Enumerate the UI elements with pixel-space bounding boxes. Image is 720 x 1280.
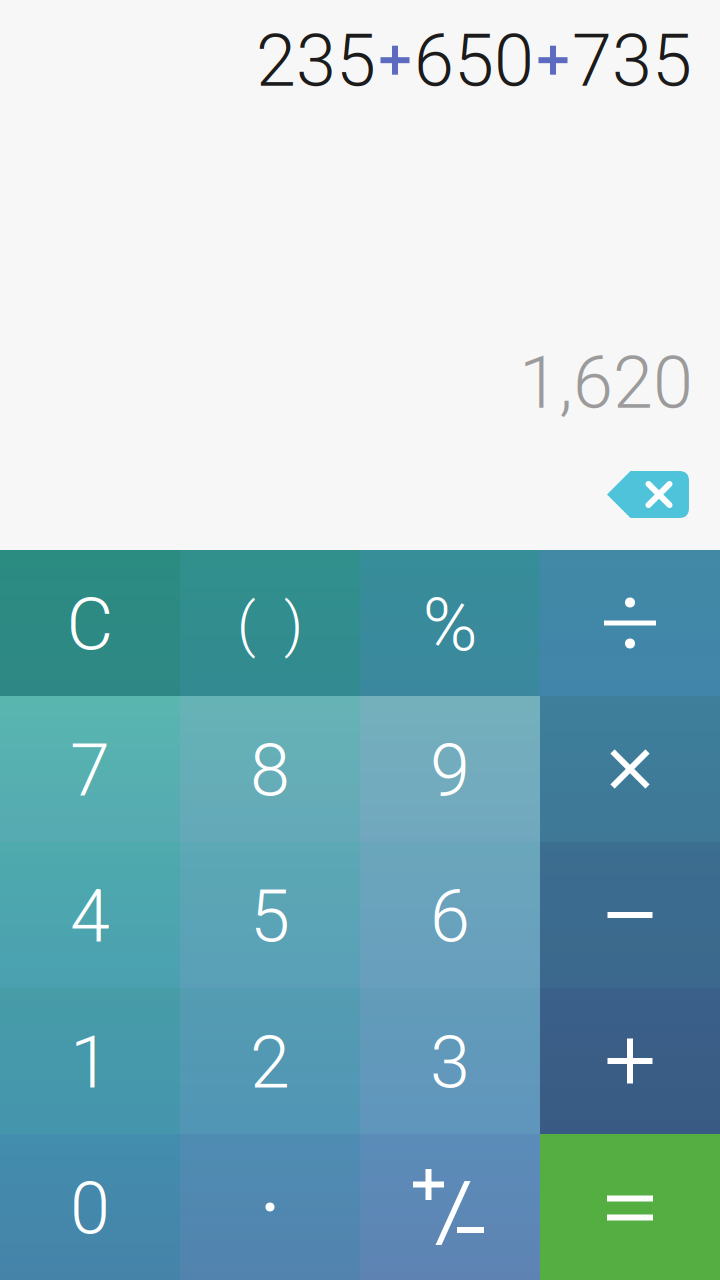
button[interactable]: 2 [180,988,360,1134]
button[interactable]: C [0,550,180,696]
staticText: 1 [70,1021,110,1105]
button[interactable]: Subtract [540,842,720,988]
button[interactable]: 4 [0,842,180,988]
button[interactable]: % [360,550,540,696]
button[interactable]: Divide [540,550,720,696]
staticText: 5 [250,875,290,959]
staticText: % [422,581,477,669]
staticText: 6 [430,875,470,959]
button[interactable]: 3 [360,988,540,1134]
button[interactable]: 8 [180,696,360,842]
staticText: 7 [70,729,110,813]
button[interactable]: Decimal point [180,1134,360,1280]
button[interactable]: 1 [0,988,180,1134]
button[interactable]: ( ) [180,550,360,696]
staticText: 4 [70,875,110,959]
button[interactable]: Equals [540,1134,720,1280]
staticText: C [66,583,113,667]
staticText: ( ) [237,591,303,659]
button[interactable]: Plus minus [360,1134,540,1280]
button[interactable]: Add [540,988,720,1134]
staticText: 1,620 [519,341,693,425]
staticText: 9 [430,729,470,813]
button[interactable]: 0 [0,1134,180,1280]
staticText: 235 [256,19,376,103]
staticText: 2 [250,1021,290,1105]
staticText: 0 [70,1167,110,1251]
button[interactable]: 5 [180,842,360,988]
button[interactable]: 9 [360,696,540,842]
staticText: 3 [430,1021,470,1105]
staticText: 650 [414,19,534,103]
button[interactable]: 7 [0,696,180,842]
button[interactable]: Multiply [540,696,720,842]
button[interactable]: 6 [360,842,540,988]
staticText: 735 [572,19,692,103]
button[interactable]: Delete [607,471,689,518]
staticText: 8 [250,729,290,813]
